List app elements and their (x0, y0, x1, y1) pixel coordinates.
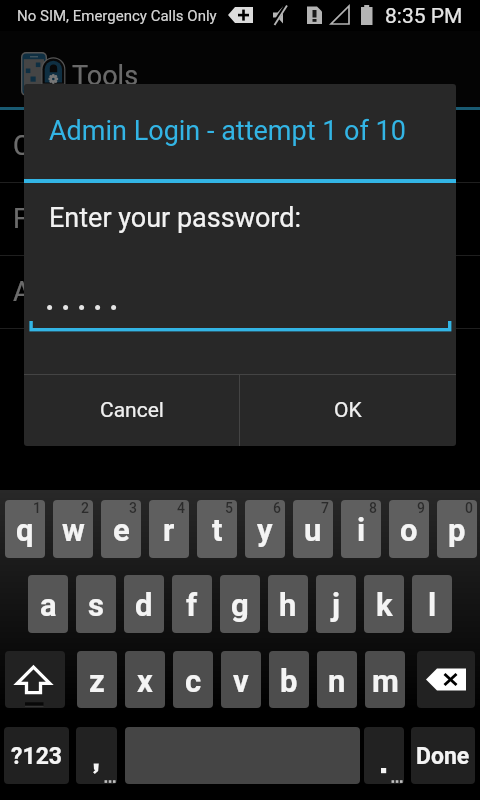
staticText: r (163, 512, 175, 548)
staticText: 1 (33, 500, 41, 516)
button[interactable]: m (365, 651, 405, 708)
staticText: f (186, 587, 198, 623)
staticText: Change PIN (13, 130, 155, 162)
staticText: k (376, 587, 393, 623)
button[interactable]: Cancel (24, 375, 239, 446)
button[interactable]: Admin Login (0, 256, 480, 328)
staticText: Done (416, 743, 470, 770)
button[interactable]: k (364, 575, 404, 633)
button[interactable]: v (221, 651, 261, 708)
staticText: 7 (321, 500, 329, 516)
staticText: Admin Login - attempt 1 of 10 (49, 115, 406, 147)
staticText: 8 (369, 500, 377, 516)
other: Tools app icon (21, 52, 69, 100)
staticText: 8:35 PM (385, 4, 463, 29)
staticText: OK (334, 398, 362, 423)
button[interactable]: d (124, 575, 164, 633)
button[interactable]: t (197, 500, 237, 558)
button[interactable]: Shift (5, 651, 65, 708)
button[interactable]: Period (364, 727, 404, 784)
staticText: u (304, 512, 322, 548)
staticText: 9 (417, 500, 425, 516)
staticText: n (328, 663, 346, 699)
button[interactable]: Change PIN (0, 110, 480, 182)
button[interactable]: u (293, 500, 333, 558)
button[interactable]: n (317, 651, 357, 708)
staticText: g (231, 587, 249, 623)
button[interactable]: h (268, 575, 308, 633)
staticText: m (372, 663, 399, 699)
staticText: ?123 (11, 743, 63, 770)
staticText: Tools (72, 60, 139, 92)
staticText: 6 (273, 500, 281, 516)
button[interactable]: j (316, 575, 356, 633)
staticText: b (280, 663, 298, 699)
button[interactable]: f (172, 575, 212, 633)
button[interactable]: Tools app icon (0, 31, 480, 107)
staticText: p (448, 512, 466, 548)
button[interactable]: x (125, 651, 165, 708)
button[interactable]: b (269, 651, 309, 708)
staticText: Cancel (100, 398, 164, 423)
staticText: 5 (225, 500, 233, 516)
staticText: s (88, 587, 104, 623)
staticText: v (233, 663, 249, 699)
button[interactable]: q (5, 500, 45, 558)
staticText: 3 (129, 500, 137, 516)
staticText: Enter your password: (49, 202, 302, 234)
button[interactable]: c (173, 651, 213, 708)
staticText: l (428, 587, 437, 623)
button[interactable]: Backspace (417, 651, 475, 708)
staticText: Admin Login (13, 276, 165, 308)
staticText: w (62, 512, 85, 548)
staticText: i (357, 512, 366, 548)
button[interactable]: i (341, 500, 381, 558)
staticText: a (40, 587, 57, 623)
button[interactable]: Comma (76, 727, 117, 784)
button[interactable]: Done (411, 727, 475, 784)
staticText: 0 (465, 500, 473, 516)
staticText: 4 (177, 500, 185, 516)
button[interactable]: a (28, 575, 68, 633)
staticText: y (257, 512, 273, 548)
staticText: e (113, 512, 130, 548)
staticText: No SIM, Emergency Calls Only (17, 7, 217, 25)
button[interactable]: r (149, 500, 189, 558)
button[interactable] (24, 280, 456, 336)
button[interactable]: OK (240, 375, 456, 446)
button[interactable]: s (76, 575, 116, 633)
button[interactable]: y (245, 500, 285, 558)
button[interactable]: z (77, 651, 117, 708)
staticText: c (185, 663, 202, 699)
staticText: 2 (81, 500, 89, 516)
staticText: q (16, 512, 34, 548)
staticText: t (212, 512, 223, 548)
staticText: d (135, 587, 153, 623)
staticText: x (137, 663, 153, 699)
button[interactable]: p (437, 500, 477, 558)
staticText: h (279, 587, 297, 623)
other: Status icons (228, 3, 378, 27)
staticText: Force Lock (13, 203, 145, 235)
button[interactable]: l (412, 575, 452, 633)
staticText: z (89, 663, 105, 699)
staticText: j (332, 587, 341, 623)
button[interactable]: o (389, 500, 429, 558)
button[interactable]: g (220, 575, 260, 633)
staticText: o (400, 512, 418, 548)
button[interactable]: ?123 (4, 727, 69, 784)
button[interactable]: e (101, 500, 141, 558)
button[interactable]: Force Lock (0, 183, 480, 255)
button[interactable]: w (53, 500, 93, 558)
